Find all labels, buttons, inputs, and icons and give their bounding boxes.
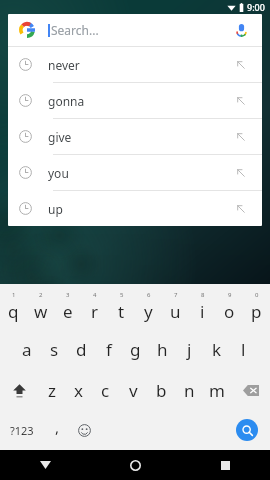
staticText: p [251, 300, 262, 323]
button[interactable]: s [41, 329, 68, 370]
button[interactable]: you [8, 155, 262, 190]
button[interactable]: Google [8, 14, 262, 46]
button[interactable]: up [8, 191, 262, 226]
staticText: ?123 [10, 423, 34, 438]
staticText: y [144, 300, 153, 323]
button[interactable]: c [92, 370, 119, 411]
staticText: a [22, 338, 32, 361]
button[interactable]: give [8, 119, 262, 154]
button[interactable]: 4 [81, 288, 108, 329]
button[interactable]: Insert never [231, 55, 251, 75]
staticText: d [76, 338, 87, 361]
button[interactable]: , [44, 411, 71, 449]
staticText: b [156, 379, 167, 402]
button[interactable]: 2 [27, 288, 54, 329]
button[interactable]: b [147, 370, 175, 411]
staticText: o [224, 300, 235, 323]
staticText: 4 [93, 291, 97, 299]
staticText: 3 [66, 291, 70, 299]
staticText: 1 [12, 291, 16, 299]
button[interactable]: Insert you [231, 163, 251, 183]
staticText: give [48, 129, 72, 145]
button[interactable]: l [230, 329, 257, 370]
staticText: gonna [48, 93, 85, 109]
button[interactable]: m [203, 370, 231, 411]
button[interactable]: Search [223, 411, 270, 449]
staticText: 9:00 [247, 1, 265, 13]
staticText: Search... [51, 22, 99, 38]
button[interactable]: never [8, 47, 262, 82]
button[interactable]: Back [0, 450, 90, 480]
button[interactable]: 9 [216, 288, 243, 329]
staticText: 2 [39, 291, 43, 299]
button[interactable]: 0 [243, 288, 270, 329]
staticText: f [106, 338, 112, 361]
staticText: k [212, 338, 222, 361]
button[interactable]: Insert give [231, 127, 251, 147]
staticText: n [184, 379, 195, 402]
button[interactable]: 7 [162, 288, 189, 329]
button[interactable]: j [176, 329, 203, 370]
button[interactable]: Insert up [231, 199, 251, 219]
staticText: you [48, 165, 69, 181]
button[interactable]: Insert gonna [231, 91, 251, 111]
staticText: h [157, 338, 168, 361]
button[interactable]: 3 [54, 288, 81, 329]
button[interactable]: z [38, 370, 65, 411]
staticText: , [55, 417, 60, 437]
other: Google [19, 22, 35, 38]
staticText: 7 [174, 291, 178, 299]
button[interactable]: v [119, 370, 147, 411]
staticText: r [91, 300, 99, 323]
button[interactable]: Emoji [71, 411, 98, 449]
button[interactable]: 6 [135, 288, 162, 329]
button[interactable]: Recents [180, 450, 270, 480]
button[interactable]: h [149, 329, 176, 370]
button[interactable]: k [203, 329, 230, 370]
staticText: s [50, 338, 59, 361]
staticText: j [187, 338, 192, 361]
staticText: 6 [147, 291, 151, 299]
button[interactable]: d [68, 329, 95, 370]
button[interactable]: gonna [8, 83, 262, 118]
staticText: m [209, 379, 225, 402]
staticText: 8 [201, 291, 205, 299]
staticText: g [130, 338, 141, 361]
staticText: w [34, 300, 48, 323]
button[interactable]: Voice search [231, 20, 251, 40]
button[interactable]: ?123 [0, 411, 44, 449]
staticText: 5 [120, 291, 124, 299]
button[interactable]: n [175, 370, 203, 411]
button[interactable]: g [122, 329, 149, 370]
button[interactable]: f [95, 329, 122, 370]
button[interactable]: a [13, 329, 41, 370]
button[interactable]: Shift [0, 370, 38, 411]
staticText: t [118, 300, 125, 323]
button[interactable]: 5 [108, 288, 135, 329]
staticText: c [101, 379, 110, 402]
staticText: z [48, 379, 56, 402]
staticText: x [74, 379, 83, 402]
staticText: e [63, 300, 73, 323]
staticText: q [8, 300, 19, 323]
staticText: 9 [228, 291, 232, 299]
button[interactable]: 1 [0, 288, 27, 329]
staticText: v [129, 379, 138, 402]
button[interactable]: x [65, 370, 92, 411]
staticText: l [241, 338, 246, 361]
button[interactable]: Backspace [231, 370, 270, 411]
staticText: up [48, 201, 63, 217]
button[interactable]: Home [90, 450, 180, 480]
staticText: i [200, 300, 205, 323]
staticText: u [170, 300, 181, 323]
button[interactable]: 8 [189, 288, 216, 329]
staticText: 0 [255, 291, 259, 299]
staticText: never [48, 57, 80, 73]
